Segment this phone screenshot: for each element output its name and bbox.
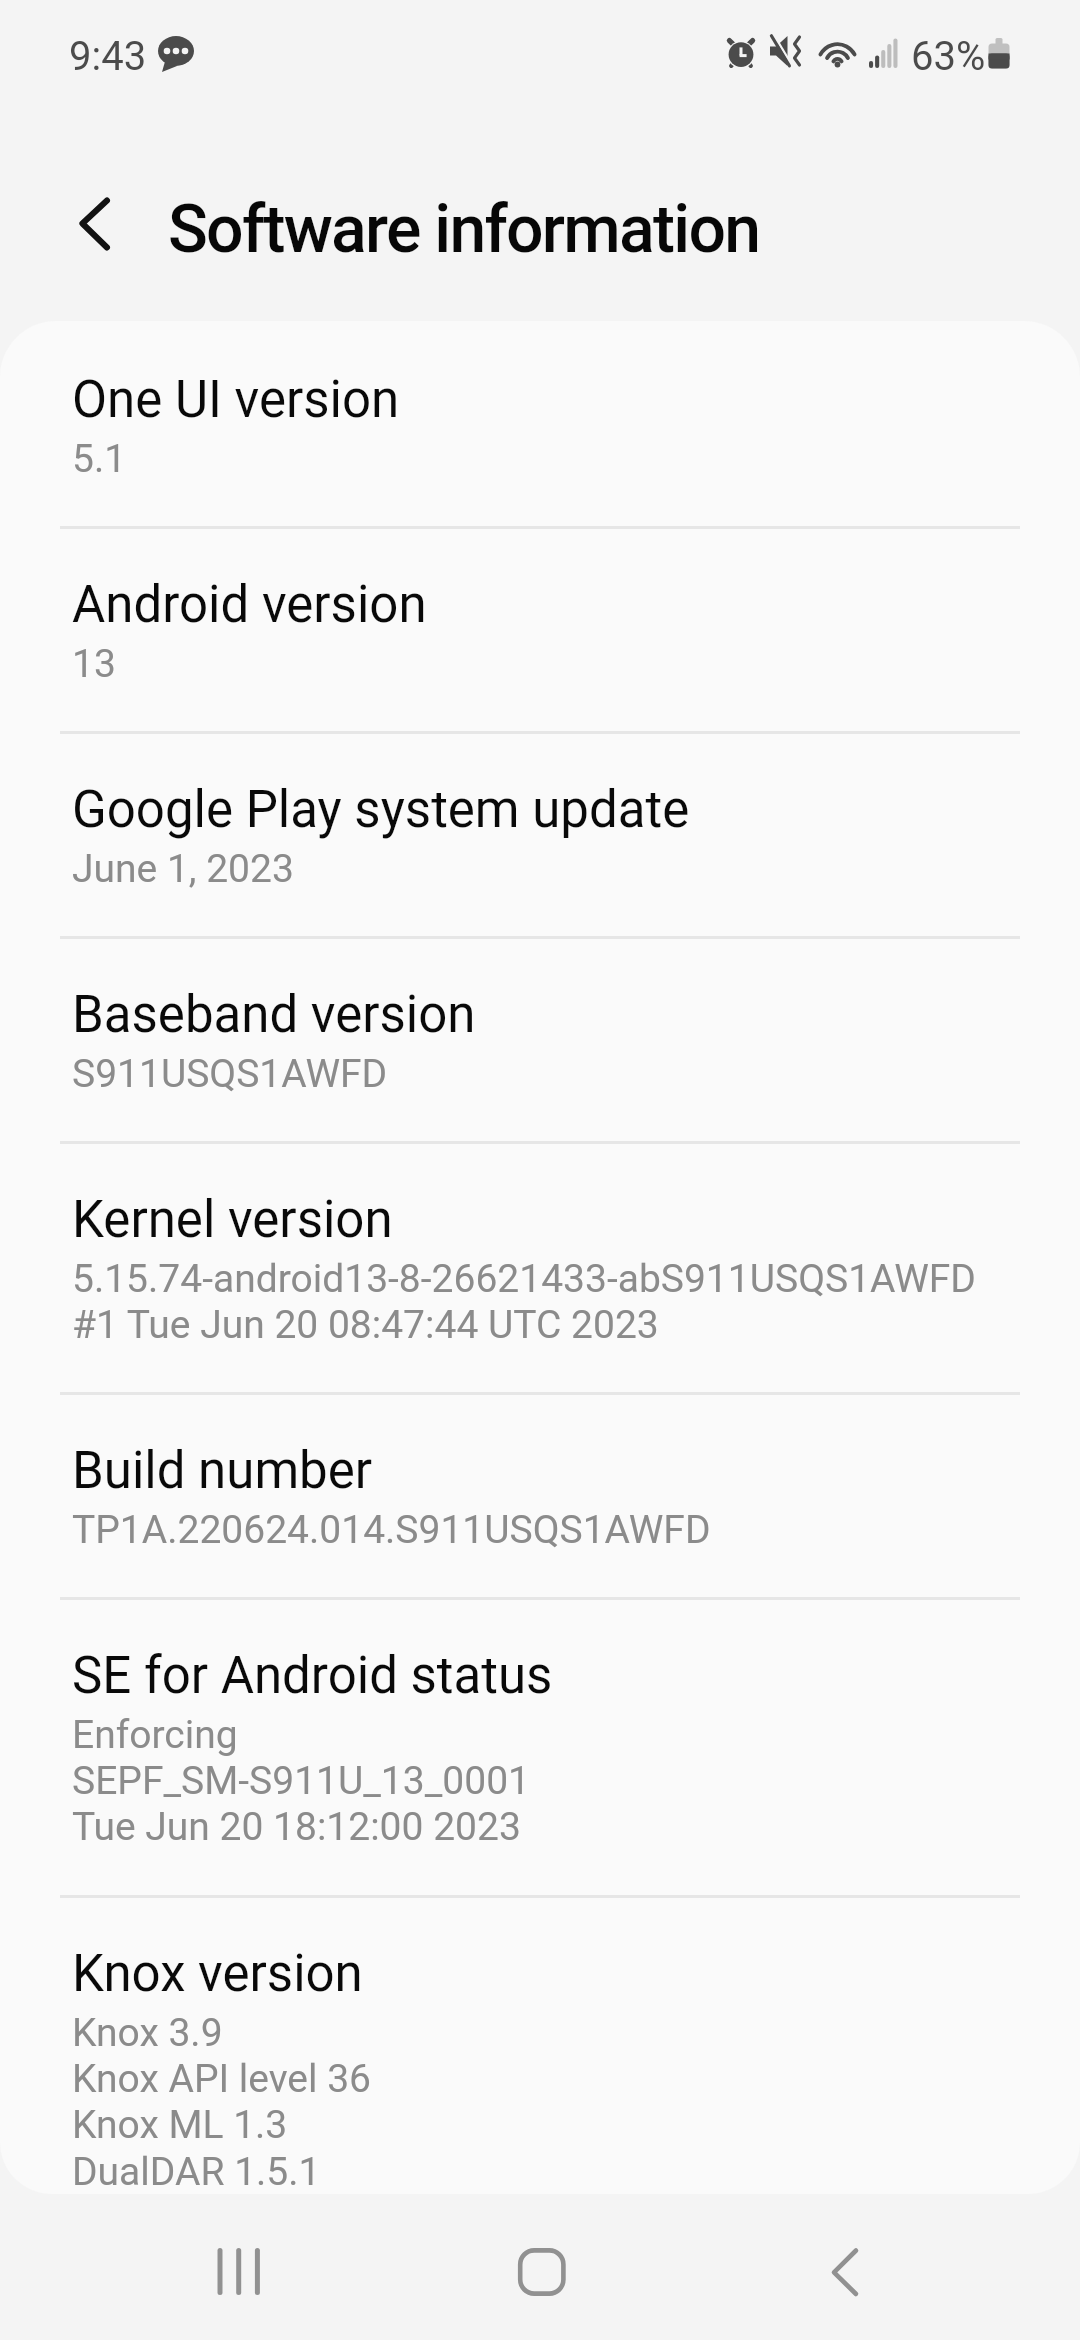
staticText: TP1A.220624.014.S911USQS1AWFD bbox=[72, 1507, 711, 1553]
staticText: #1 Tue Jun 20 08:47:44 UTC 2023 bbox=[72, 1302, 659, 1348]
button[interactable]: Kernel version bbox=[0, 1141, 1080, 1392]
staticText: Tue Jun 20 18:12:00 2023 bbox=[72, 1804, 521, 1850]
staticText: One UI version bbox=[72, 370, 400, 430]
button[interactable]: Knox version bbox=[0, 1895, 1080, 2194]
staticText: Kernel version bbox=[72, 1190, 393, 1250]
staticText: Build number bbox=[72, 1441, 373, 1501]
button[interactable]: Navigate up bbox=[35, 161, 161, 287]
staticText: Software information bbox=[168, 191, 760, 268]
button[interactable]: Build number bbox=[0, 1392, 1080, 1597]
button[interactable]: Android version bbox=[0, 526, 1080, 731]
staticText: Google Play system update bbox=[72, 780, 690, 840]
staticText: DualDAR 1.5.1 bbox=[72, 2149, 321, 2194]
staticText: SE for Android status bbox=[72, 1646, 553, 1706]
button[interactable]: Recent apps bbox=[180, 2211, 300, 2331]
staticText: 13 bbox=[72, 641, 116, 687]
staticText: SEPF_SM-S911U_13_0001 bbox=[72, 1758, 530, 1804]
button[interactable]: One UI version bbox=[0, 321, 1080, 526]
staticText: Knox 3.9 bbox=[72, 2010, 223, 2056]
staticText: Knox ML 1.3 bbox=[72, 2102, 288, 2148]
button[interactable]: Google Play system update bbox=[0, 731, 1080, 936]
staticText: Android version bbox=[72, 575, 427, 635]
button[interactable]: Back bbox=[784, 2211, 904, 2331]
staticText: 9:43 bbox=[69, 33, 147, 80]
staticText: Knox API level 36 bbox=[72, 2056, 371, 2102]
staticText: S911USQS1AWFD bbox=[72, 1051, 388, 1097]
staticText: Baseband version bbox=[72, 985, 476, 1045]
staticText: 5.1 bbox=[72, 436, 127, 482]
staticText: 63% bbox=[911, 33, 986, 80]
button[interactable]: Home bbox=[481, 2211, 601, 2331]
button[interactable]: Baseband version bbox=[0, 936, 1080, 1141]
staticText: Enforcing bbox=[72, 1712, 238, 1758]
button[interactable]: SE for Android status bbox=[0, 1597, 1080, 1895]
staticText: Knox version bbox=[72, 1944, 363, 2004]
staticText: June 1, 2023 bbox=[72, 846, 294, 892]
staticText: 5.15.74-android13-8-26621433-abS911USQS1… bbox=[72, 1256, 976, 1302]
